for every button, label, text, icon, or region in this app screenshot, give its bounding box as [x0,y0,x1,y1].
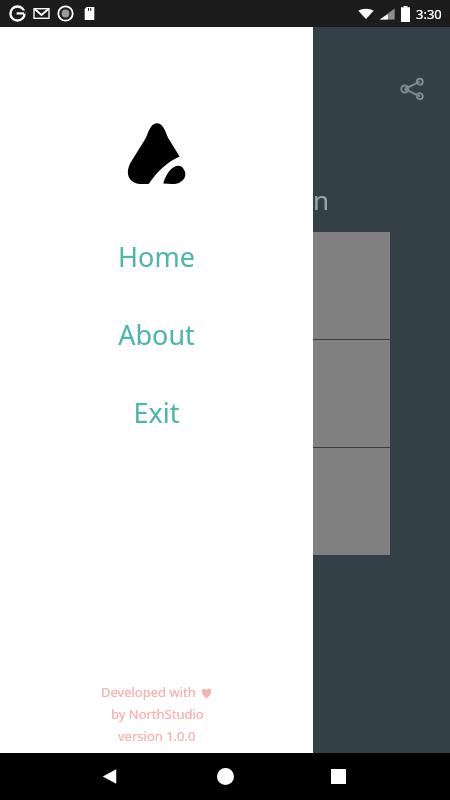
button[interactable]: Share [390,67,434,111]
button[interactable]: Exit [0,390,313,435]
staticText: Home [118,238,195,275]
staticText: Exit [133,394,180,431]
staticText: About [118,316,195,353]
staticText: n [313,182,330,217]
staticText: Developed with [101,683,200,701]
button[interactable]: Recent apps [314,753,362,800]
button[interactable] [200,340,390,447]
button[interactable] [200,448,390,555]
staticText: by NorthStudio [111,705,204,723]
button[interactable]: Home [0,234,313,279]
button[interactable]: Home [201,753,249,800]
button[interactable]: About [0,312,313,357]
staticText: version 1.0.0 [118,727,196,745]
staticText: 3:30 [416,5,442,23]
button[interactable]: Back [85,753,133,800]
button[interactable] [200,232,390,339]
